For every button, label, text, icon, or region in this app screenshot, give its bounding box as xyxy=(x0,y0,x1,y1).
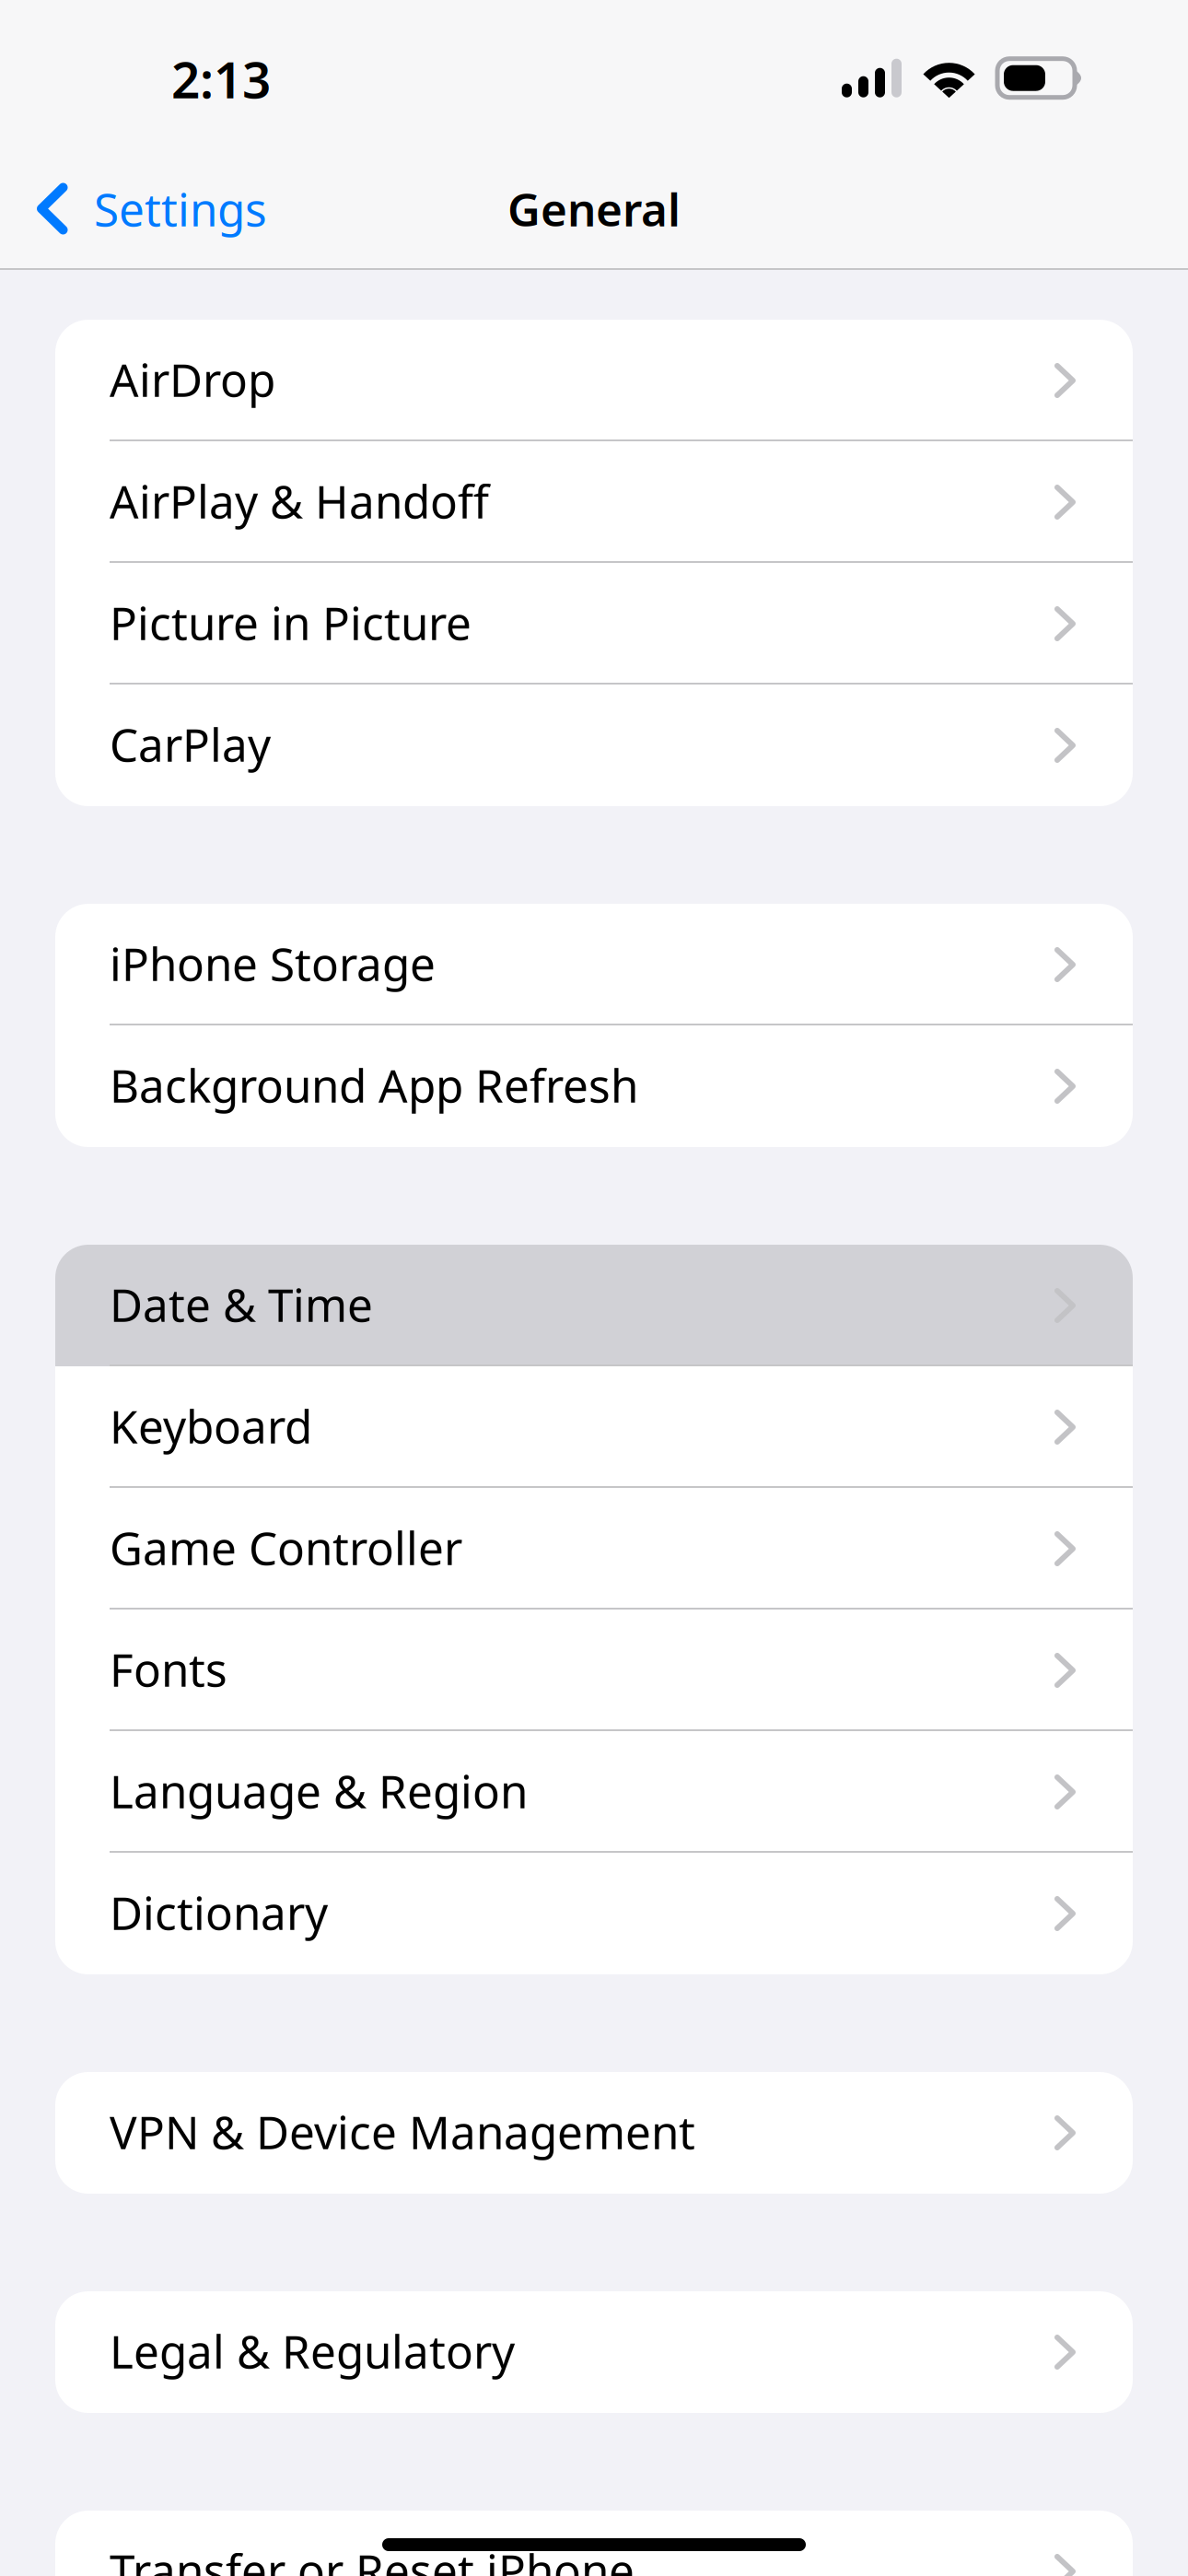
staticText: Picture in Picture xyxy=(110,592,472,652)
staticText: Date & Time xyxy=(110,1274,373,1334)
button[interactable]: AirPlay & Handoff xyxy=(55,441,1133,563)
staticText: Legal & Regulatory xyxy=(110,2321,515,2381)
staticText: Transfer or Reset iPhone xyxy=(110,2540,635,2576)
staticText: AirDrop xyxy=(110,349,275,409)
staticText: Game Controller xyxy=(110,1517,462,1577)
staticText: Language & Region xyxy=(110,1760,528,1821)
button[interactable]: AirDrop xyxy=(55,320,1133,441)
button[interactable]: Dictionary xyxy=(55,1853,1133,1974)
staticText: iPhone Storage xyxy=(110,933,436,993)
button[interactable]: Transfer or Reset iPhone xyxy=(55,2511,1133,2576)
button[interactable]: Language & Region xyxy=(55,1731,1133,1853)
staticText: CarPlay xyxy=(110,714,271,774)
staticText: VPN & Device Management xyxy=(110,2101,695,2162)
button[interactable]: VPN & Device Management xyxy=(55,2072,1133,2194)
button[interactable]: Keyboard xyxy=(55,1366,1133,1488)
button[interactable]: Game Controller xyxy=(55,1488,1133,1610)
button[interactable]: Fonts xyxy=(55,1610,1133,1731)
button[interactable]: Date & Time xyxy=(55,1245,1133,1366)
staticText: Background App Refresh xyxy=(110,1055,638,1115)
staticText: Settings xyxy=(94,178,267,239)
staticText: General xyxy=(507,178,681,239)
staticText: Dictionary xyxy=(110,1882,328,1942)
button[interactable]: CarPlay xyxy=(55,685,1133,806)
button[interactable]: Picture in Picture xyxy=(55,563,1133,685)
button[interactable]: Legal & Regulatory xyxy=(55,2291,1133,2413)
staticText: Keyboard xyxy=(110,1396,312,1456)
button[interactable]: iPhone Storage xyxy=(55,904,1133,1025)
staticText: AirPlay & Handoff xyxy=(110,471,489,531)
staticText: 2:13 xyxy=(171,45,271,112)
button[interactable]: Background App Refresh xyxy=(55,1025,1133,1147)
button[interactable]: Back to Settings xyxy=(0,148,289,269)
staticText: Fonts xyxy=(110,1639,227,1699)
